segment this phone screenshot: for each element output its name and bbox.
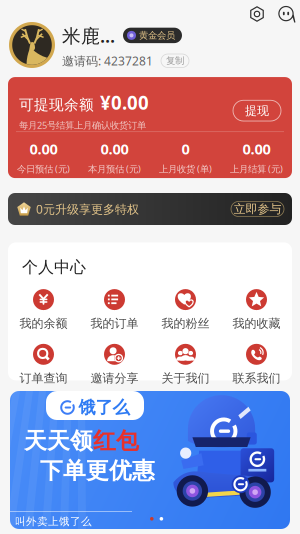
staticText: 上月收货 (单) [159, 162, 212, 175]
staticText: 叫外卖上饿了么 [15, 515, 92, 528]
staticText: 提现 [245, 103, 269, 118]
button[interactable]: 邀请分享 [79, 344, 150, 385]
button[interactable]: 订单查询 [8, 344, 79, 385]
staticText: 个人中心 [22, 257, 86, 277]
staticText: 0.00 [100, 139, 128, 159]
staticText: ¥0.00 [100, 90, 149, 115]
staticText: 立即参与 [233, 202, 281, 216]
button[interactable]: 复制 [161, 54, 189, 67]
button[interactable]: Messages [278, 6, 294, 22]
button[interactable]: 提现 [233, 100, 281, 121]
staticText: 关于我们 [161, 371, 209, 385]
staticText: 本月预估 (元) [88, 162, 141, 175]
staticText: 复制 [166, 55, 184, 66]
staticText: 黄金会员 [139, 30, 175, 41]
button[interactable]: 饿了么 [10, 391, 290, 529]
button[interactable]: 我的收藏 [221, 289, 292, 331]
staticText: 我的订单 [90, 316, 138, 331]
staticText: 下单更优惠 [40, 457, 155, 485]
staticText: 0.00 [242, 139, 270, 159]
staticText: 上月结算 (元) [230, 162, 283, 175]
staticText: 今日预估 (元) [17, 162, 70, 175]
staticText: 0 [181, 139, 189, 159]
staticText: 订单查询 [19, 371, 67, 385]
staticText: 米鹿... [62, 23, 115, 48]
button[interactable]: 联系我们 [221, 344, 292, 385]
button[interactable]: 我的订单 [79, 289, 150, 331]
staticText: 饿了么 [78, 397, 129, 418]
staticText: 可提现余额 [19, 96, 94, 114]
button[interactable]: 我的余额 [8, 289, 79, 331]
staticText: 每月25号结算上月确认收货订单 [19, 119, 146, 131]
staticText: 天天领 [24, 427, 93, 455]
button[interactable]: 0元升级享更多特权 [8, 193, 292, 225]
button[interactable]: Settings [249, 6, 265, 22]
staticText: 我的余额 [19, 316, 67, 331]
staticText: 0.00 [29, 139, 57, 159]
staticText: 邀请码: 4237281 [62, 53, 153, 69]
button[interactable]: 我的粉丝 [150, 289, 221, 331]
staticText: 联系我们 [232, 371, 280, 385]
staticText: 我的粉丝 [161, 316, 209, 331]
staticText: 邀请分享 [90, 371, 138, 385]
staticText: 红包 [93, 427, 139, 455]
staticText: 我的收藏 [232, 316, 280, 331]
staticText: 0元升级享更多特权 [36, 201, 139, 217]
button[interactable]: 关于我们 [150, 344, 221, 385]
